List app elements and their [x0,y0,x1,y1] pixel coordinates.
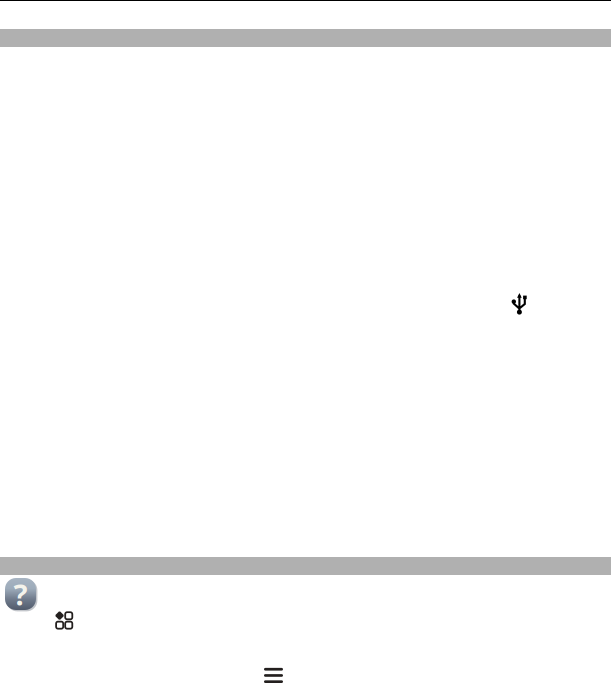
button[interactable]: Help [5,578,37,611]
button[interactable]: USB [511,293,528,314]
button[interactable]: Apps [55,611,73,629]
button[interactable]: Menu [264,668,283,682]
staticText: ? [13,574,27,613]
